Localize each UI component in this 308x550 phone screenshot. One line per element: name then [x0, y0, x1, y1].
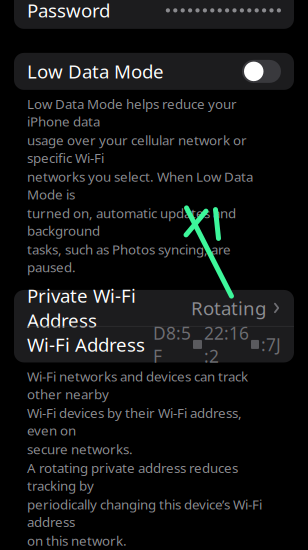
- staticText: Low Data Mode: [27, 59, 164, 84]
- staticText: on this network.: [27, 532, 127, 549]
- staticText: Wi-Fi Address: [27, 332, 145, 357]
- staticText: :7J: [261, 333, 281, 356]
- staticText: secure networks.: [27, 440, 133, 458]
- staticText: D8:5F: [153, 321, 191, 367]
- staticText: Wi-Fi networks and devices can track oth…: [27, 367, 248, 403]
- button[interactable]: Private Wi-Fi Address: [14, 290, 294, 326]
- button[interactable]: Low Data Mode: [14, 53, 294, 90]
- staticText: Private Wi-Fi Address: [27, 283, 136, 333]
- staticText: Rotating: [191, 295, 266, 320]
- staticText: turned on, automatic updates and backgro…: [27, 204, 236, 239]
- button[interactable]: Password: [14, 0, 294, 29]
- staticText: 22:16:2: [204, 321, 249, 367]
- staticText: networks you select. When Low Data Mode …: [27, 168, 253, 203]
- staticText: Password: [27, 0, 110, 23]
- staticText: tasks, such as Photos syncing, are pause…: [27, 240, 231, 276]
- staticText: Wi-Fi devices by their Wi-Fi address, ev…: [27, 404, 242, 439]
- staticText: periodically changing this device’s Wi-F…: [27, 495, 262, 531]
- staticText: A rotating private address reduces track…: [27, 459, 238, 494]
- staticText: usage over your cellular network or spec…: [27, 131, 247, 167]
- staticText: Low Data Mode helps reduce your iPhone d…: [27, 95, 237, 130]
